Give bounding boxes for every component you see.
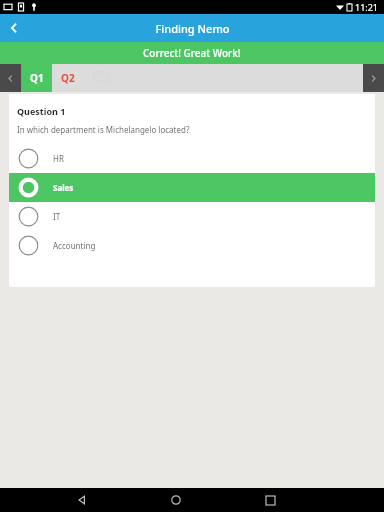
button[interactable]: Sales	[9, 173, 375, 202]
button[interactable]: IT	[9, 202, 375, 231]
staticText: Finding Nemo	[155, 21, 230, 36]
staticText: HR	[53, 153, 64, 164]
button[interactable]: Home	[161, 488, 191, 512]
staticText: Question 1	[17, 105, 66, 117]
button[interactable]: Q2	[52, 64, 83, 92]
staticText: IT	[53, 211, 61, 222]
button[interactable]: Back	[67, 488, 97, 512]
staticText: Accounting	[53, 240, 96, 251]
button[interactable]: Q1	[21, 64, 52, 92]
staticText: In which department is Michelangelo loca…	[17, 124, 190, 135]
staticText: Q2	[61, 71, 75, 85]
staticText: Correct! Great Work!	[143, 46, 241, 60]
button[interactable]: Recent apps	[255, 488, 285, 512]
button[interactable]: Back	[0, 14, 28, 42]
button[interactable]: Accounting	[9, 231, 375, 260]
button[interactable]: HR	[9, 144, 375, 173]
button[interactable]: Previous question	[0, 64, 21, 92]
staticText: Q1	[30, 71, 44, 85]
staticText: Sales	[53, 182, 74, 193]
staticText: 11:21	[355, 1, 379, 13]
button[interactable]: Next question	[363, 64, 384, 92]
